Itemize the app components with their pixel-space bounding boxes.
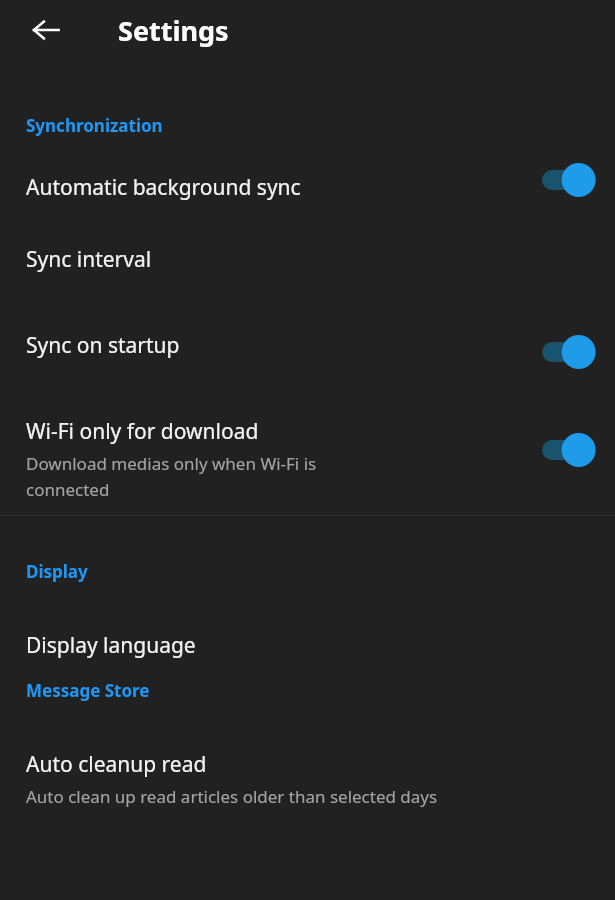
button[interactable]: Wi-Fi only for download [0, 395, 615, 505]
staticText: Sync interval [26, 245, 152, 274]
button[interactable]: Display language [0, 583, 615, 669]
staticText: Display [26, 560, 88, 583]
button[interactable]: Automatic background sync [0, 137, 615, 223]
staticText: Wi-Fi only for download [26, 417, 259, 446]
staticText: Display language [26, 631, 196, 660]
staticText: Settings [118, 12, 229, 49]
staticText: Synchronization [26, 114, 163, 137]
staticText: Automatic background sync [26, 173, 301, 202]
staticText: Sync on startup [26, 331, 180, 360]
button[interactable]: Sync on startup [0, 309, 615, 395]
button[interactable]: Sync interval [0, 223, 615, 309]
staticText: Auto cleanup read [26, 750, 207, 779]
button[interactable]: Back [22, 6, 70, 54]
button[interactable]: Auto cleanup read [0, 702, 615, 812]
staticText: Message Store [26, 679, 150, 702]
staticText: Auto clean up read articles older than s… [26, 785, 438, 808]
staticText: Download medias only when Wi-Fi is conne… [26, 452, 317, 501]
